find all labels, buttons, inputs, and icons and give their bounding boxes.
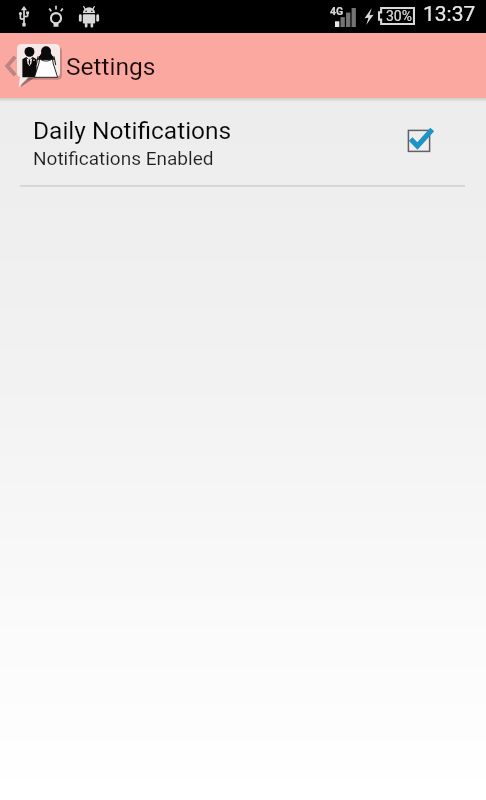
button[interactable]: Daily Notifications	[0, 99, 486, 185]
staticText: 30%	[386, 8, 412, 24]
staticText: Settings	[66, 52, 156, 81]
staticText: 4G	[330, 5, 344, 17]
button[interactable]: Back	[0, 33, 62, 98]
staticText: Daily Notifications	[33, 116, 232, 145]
staticText: Notifications Enabled	[33, 147, 214, 169]
staticText: 13:37	[423, 2, 476, 27]
